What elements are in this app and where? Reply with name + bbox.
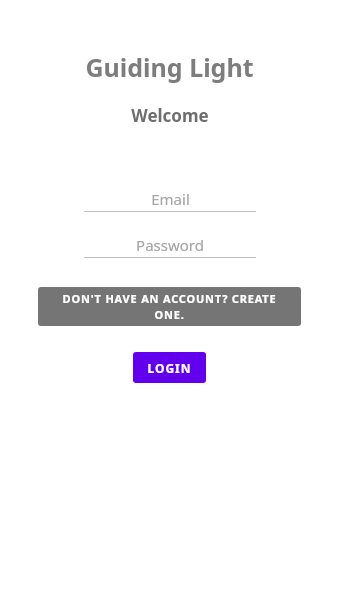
- staticText: Email: [151, 189, 190, 209]
- staticText: Password: [136, 235, 204, 255]
- button[interactable]: DON'T HAVE AN ACCOUNT? CREATE ONE.: [38, 287, 301, 326]
- staticText: Guiding Light: [85, 50, 254, 84]
- staticText: Welcome: [131, 104, 209, 127]
- staticText: DON'T HAVE AN ACCOUNT? CREATE ONE.: [52, 291, 287, 322]
- staticText: LOGIN: [147, 360, 192, 376]
- button[interactable]: Email: [84, 186, 256, 212]
- button[interactable]: Password: [84, 232, 256, 258]
- button[interactable]: LOGIN: [133, 352, 206, 383]
